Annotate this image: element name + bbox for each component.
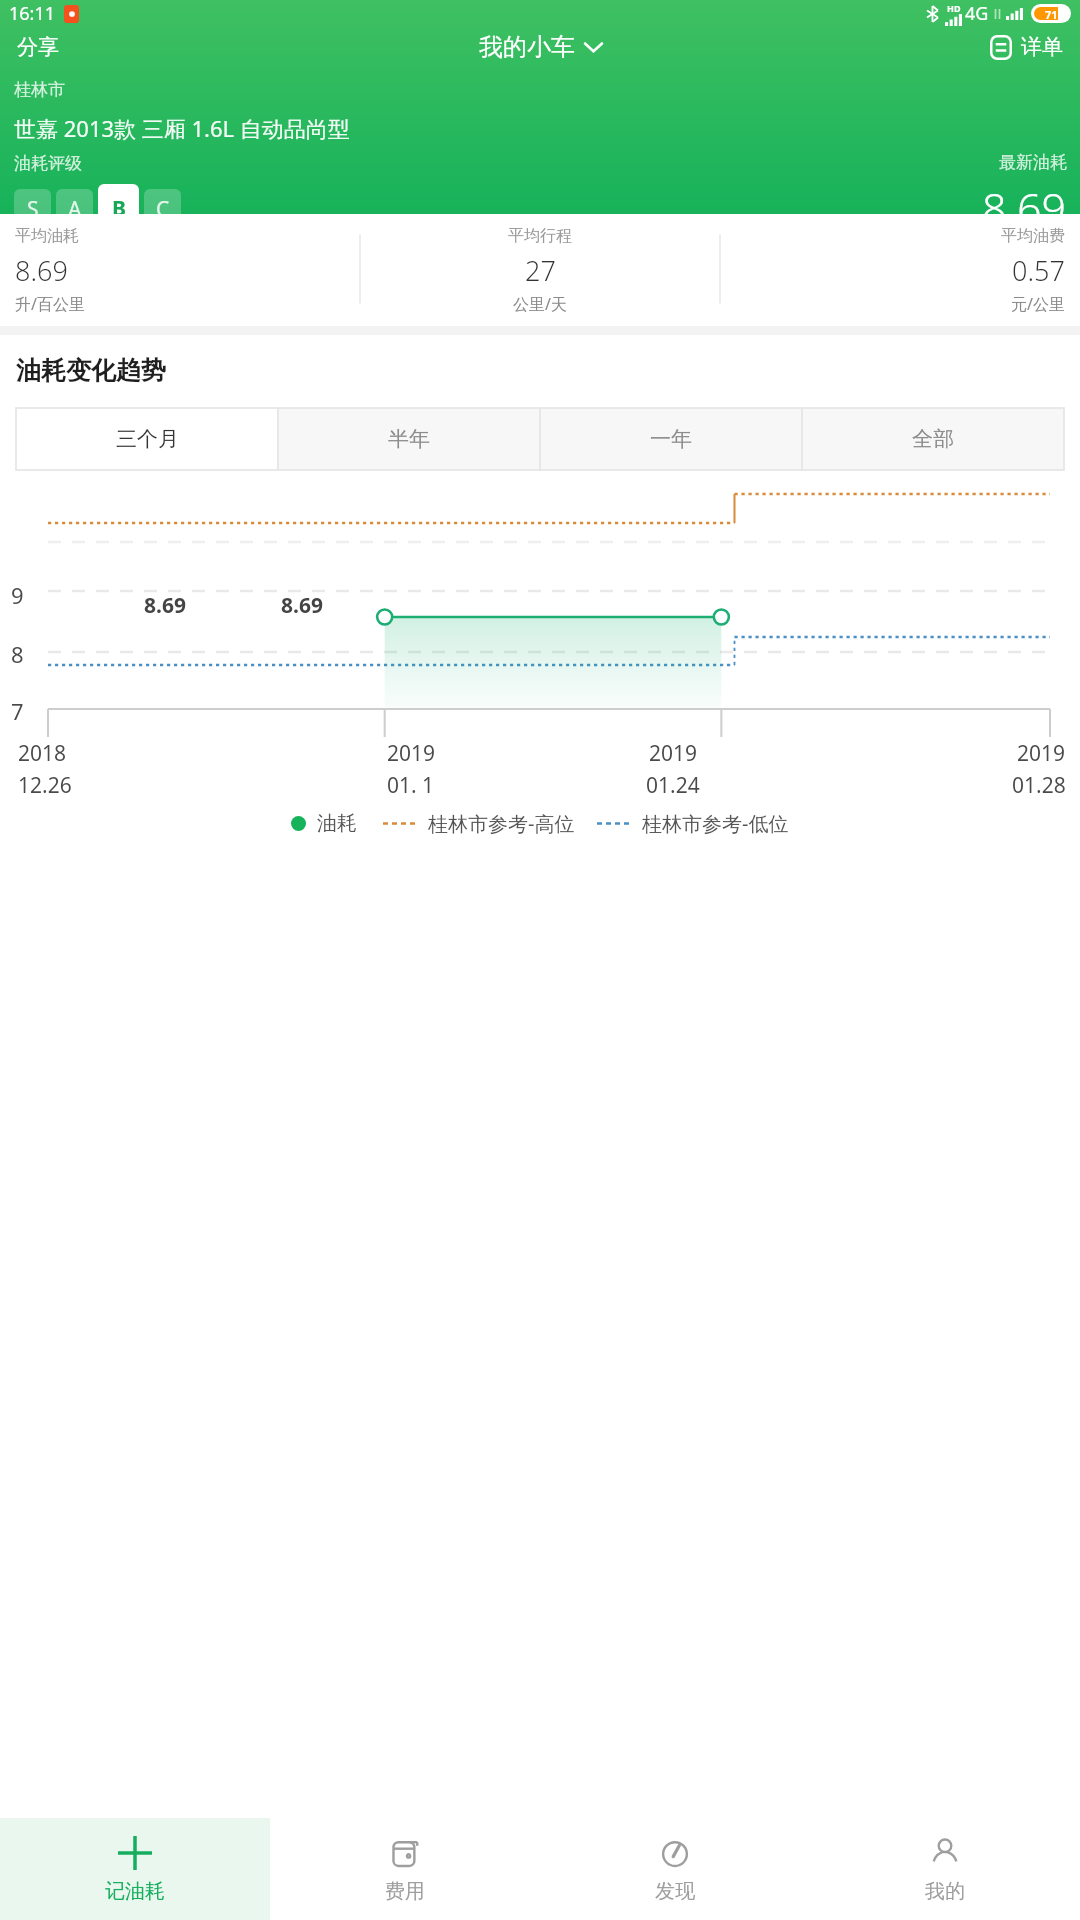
staticText: 0.57 <box>1012 252 1065 289</box>
staticText: A <box>68 195 82 224</box>
staticText: 桂林市 <box>14 79 65 100</box>
staticText: 8.69 <box>982 178 1067 237</box>
button[interactable]: Details <box>979 28 1074 66</box>
staticText: 2019 <box>1017 739 1066 768</box>
staticText: 01.28 <box>1012 771 1066 800</box>
staticText: 全部 <box>912 426 954 452</box>
staticText: 最新油耗 <box>999 152 1067 173</box>
staticText: 16:11 <box>9 1 56 26</box>
staticText: 公里/天 <box>513 293 567 315</box>
button[interactable]: 平均行程 <box>360 214 720 326</box>
staticText: B <box>112 194 126 223</box>
staticText: 7 <box>11 696 24 726</box>
button[interactable]: 我的小车 <box>467 26 614 68</box>
staticText: 世嘉 2013款 三厢 1.6L 自动品尚型 <box>14 113 350 143</box>
button[interactable]: 记油耗 <box>0 1818 270 1920</box>
button[interactable]: S <box>14 189 51 230</box>
staticText: 油耗 <box>317 811 357 836</box>
button[interactable]: 半年 <box>278 408 540 470</box>
staticText: 2019 <box>387 739 436 768</box>
button[interactable]: 平均油耗 <box>0 214 360 326</box>
staticText: 一年 <box>650 426 692 452</box>
staticText: 桂林市参考-高位 <box>428 810 575 837</box>
staticText: 27 <box>525 252 556 289</box>
staticText: 8.69 <box>15 252 68 289</box>
staticText: 升/百公里 <box>997 238 1067 260</box>
other: Details <box>990 35 1012 60</box>
staticText: 油耗变化趋势 <box>16 355 166 386</box>
button[interactable]: 分享 <box>6 27 70 67</box>
staticText: 元/公里 <box>1011 293 1065 315</box>
staticText: HD <box>947 2 961 14</box>
button[interactable]: 一年 <box>540 408 802 470</box>
staticText: 01.24 <box>646 771 700 800</box>
staticText: 升/百公里 <box>15 293 85 315</box>
staticText: 发现 <box>655 1879 695 1904</box>
staticText: 平均油耗 <box>15 226 79 246</box>
staticText: 平均油费 <box>1001 226 1065 246</box>
staticText: 分享 <box>17 34 59 60</box>
staticText: 8.69 <box>281 591 323 620</box>
staticText: S <box>27 195 39 224</box>
staticText: 01. 1 <box>387 771 435 800</box>
button[interactable]: 全部 <box>802 408 1064 470</box>
button[interactable]: A <box>56 189 93 230</box>
staticText: 详单 <box>1021 34 1063 60</box>
button[interactable]: 费用 <box>270 1818 540 1920</box>
staticText: 12.26 <box>18 771 72 800</box>
staticText: C <box>156 195 170 224</box>
staticText: 9 <box>11 580 24 610</box>
staticText: 三个月 <box>116 426 179 452</box>
staticText: 8 <box>11 639 24 669</box>
staticText: 半年 <box>388 426 430 452</box>
button[interactable]: 平均油费 <box>720 214 1080 326</box>
staticText: 费用 <box>385 1879 425 1904</box>
staticText: 8.69 <box>144 591 186 620</box>
button[interactable]: C <box>144 189 181 230</box>
staticText: 桂林市参考-低位 <box>642 810 789 837</box>
staticText: 我的 <box>925 1879 965 1904</box>
staticText: 油耗评级 <box>14 153 82 174</box>
staticText: 记油耗 <box>105 1879 165 1904</box>
button[interactable]: 发现 <box>540 1818 810 1920</box>
button[interactable]: B <box>98 184 139 233</box>
staticText: 4G <box>965 1 989 26</box>
staticText: 71 <box>1045 7 1058 20</box>
button[interactable]: 我的 <box>810 1818 1080 1920</box>
staticText: 2018 <box>18 739 67 768</box>
staticText: 我的小车 <box>479 32 575 62</box>
staticText: 平均行程 <box>508 226 572 246</box>
button[interactable]: 三个月 <box>16 408 278 470</box>
staticText: 2019 <box>649 739 698 768</box>
